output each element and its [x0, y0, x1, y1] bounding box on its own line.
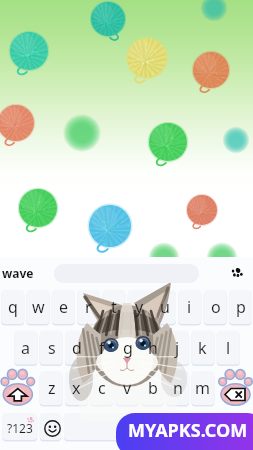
button[interactable]: l [217, 331, 240, 365]
staticText: d [72, 337, 82, 359]
button[interactable]: z [40, 371, 63, 405]
button[interactable]: k [191, 331, 214, 365]
button[interactable]: wave [0, 260, 50, 286]
button[interactable]: u [153, 290, 176, 324]
button[interactable]: h [141, 331, 164, 365]
button[interactable]: c [90, 371, 113, 405]
button[interactable]: o [204, 290, 227, 324]
button[interactable]: m [191, 371, 214, 405]
staticText: n [173, 377, 183, 399]
staticText: e [59, 296, 69, 318]
staticText: y [135, 296, 144, 318]
staticText: x [72, 377, 81, 399]
staticText: q [8, 296, 18, 318]
button[interactable]: f [90, 331, 113, 365]
staticText: w [32, 296, 45, 318]
staticText: i [187, 296, 192, 318]
button[interactable]: s [40, 331, 63, 365]
button[interactable]: r [77, 290, 100, 324]
button[interactable]: n [166, 371, 189, 405]
button[interactable]: a [14, 331, 37, 365]
staticText: h [148, 337, 158, 359]
button[interactable]: y [128, 290, 151, 324]
staticText: k [198, 337, 207, 359]
staticText: c [98, 377, 106, 399]
button[interactable]: d [65, 331, 88, 365]
staticText: wave [2, 265, 34, 281]
staticText: r [85, 296, 92, 318]
staticText: m [195, 377, 210, 399]
button[interactable]: j [166, 331, 189, 365]
staticText: f [99, 337, 105, 359]
button[interactable]: t [102, 290, 125, 324]
button[interactable]: q [1, 290, 24, 324]
button[interactable]: Keyboard themes [226, 262, 247, 283]
button[interactable]: b [141, 371, 164, 405]
button[interactable]: Backspace [216, 368, 253, 408]
staticText: j [175, 337, 180, 359]
staticText: ?123 [7, 420, 33, 436]
button[interactable]: g [116, 331, 139, 365]
staticText: b [148, 377, 158, 399]
button[interactable]: i [178, 290, 201, 324]
button[interactable]: Shift [0, 368, 37, 408]
staticText: MYAPKS.COM [128, 418, 248, 443]
staticText: z [48, 377, 56, 399]
button[interactable]: MYAPKS.COM [116, 413, 253, 450]
staticText: p [236, 296, 246, 318]
staticText: a [21, 337, 30, 359]
button[interactable]: e [52, 290, 75, 324]
button[interactable]: x [65, 371, 88, 405]
staticText: t [111, 296, 117, 318]
button[interactable]: Emoji [41, 414, 63, 442]
staticText: v [123, 377, 132, 399]
button[interactable]: w [27, 290, 50, 324]
button[interactable]: ?123 [2, 414, 37, 442]
button[interactable]: p [229, 290, 252, 324]
staticText: g [123, 337, 133, 359]
staticText: u [160, 296, 170, 318]
staticText: s [48, 337, 56, 359]
staticText: l [226, 337, 231, 359]
button[interactable]: v [116, 371, 139, 405]
staticText: o [211, 296, 221, 318]
